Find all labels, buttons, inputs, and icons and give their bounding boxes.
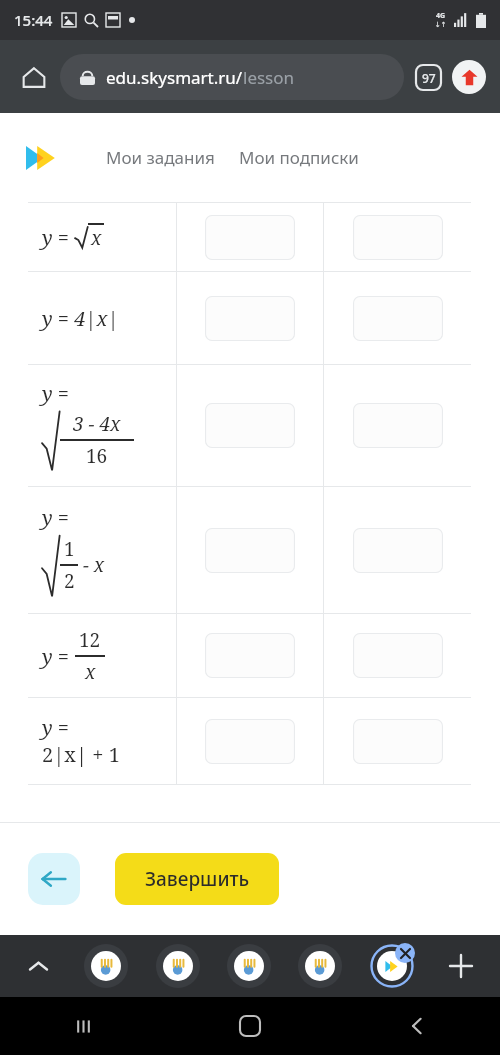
button[interactable]: Мои подписки xyxy=(239,146,359,169)
button[interactable] xyxy=(205,633,295,678)
staticText: 16 xyxy=(86,443,108,469)
button[interactable] xyxy=(353,403,443,448)
button[interactable]: Tab xyxy=(227,944,271,988)
staticText: Завершить xyxy=(145,866,250,892)
staticText: y = xyxy=(42,380,69,407)
button[interactable] xyxy=(20,136,64,180)
button[interactable] xyxy=(205,296,295,341)
button[interactable]: Home xyxy=(166,997,333,1055)
staticText: Мои задания xyxy=(106,146,215,169)
staticText: y = xyxy=(42,504,69,531)
staticText: 2 xyxy=(64,568,75,594)
button[interactable]: Back xyxy=(333,997,500,1055)
staticText: y = xyxy=(42,643,75,670)
button[interactable] xyxy=(353,528,443,573)
button[interactable]: Мои задания xyxy=(106,146,215,169)
button[interactable]: Expand xyxy=(20,948,56,984)
staticText: edu.skysmart.ru/ xyxy=(106,66,243,89)
button[interactable]: Back xyxy=(28,853,80,905)
button[interactable]: Update xyxy=(452,60,486,94)
button[interactable]: edu.skysmart.ru/ xyxy=(60,54,404,100)
button[interactable] xyxy=(353,719,443,764)
button[interactable] xyxy=(353,215,443,260)
staticText: − x xyxy=(78,552,105,578)
staticText: x xyxy=(85,659,96,685)
staticText: 97 xyxy=(422,70,436,86)
button[interactable] xyxy=(205,215,295,260)
button[interactable]: Tab xyxy=(156,944,200,988)
button[interactable] xyxy=(353,296,443,341)
staticText: 15:44 xyxy=(14,10,53,30)
button[interactable]: Close tab xyxy=(395,943,415,963)
button[interactable] xyxy=(353,633,443,678)
button[interactable]: Tab xyxy=(84,944,128,988)
staticText: 2|x| + 1 xyxy=(42,741,120,768)
staticText: lesson xyxy=(243,66,295,89)
staticText: y = xyxy=(42,714,69,741)
button[interactable] xyxy=(205,719,295,764)
staticText: ↓↑ xyxy=(435,21,447,29)
staticText: 4G xyxy=(436,11,446,21)
staticText: y = xyxy=(42,224,75,251)
staticText: 12 xyxy=(79,627,101,653)
button[interactable]: Tabs xyxy=(408,57,448,97)
staticText: 3 − 4x xyxy=(73,411,121,437)
button[interactable] xyxy=(205,528,295,573)
staticText: 1 xyxy=(64,536,75,562)
button[interactable]: Home xyxy=(14,57,54,97)
staticText: y = 4|x| xyxy=(42,305,119,332)
button[interactable] xyxy=(205,403,295,448)
button[interactable]: Завершить xyxy=(115,853,279,905)
button[interactable]: Tab xyxy=(298,944,342,988)
button[interactable]: Recents xyxy=(0,997,166,1055)
staticText: Мои подписки xyxy=(239,146,359,169)
button[interactable]: New tab xyxy=(442,947,480,985)
staticText: x xyxy=(91,225,102,251)
button[interactable]: Current tab xyxy=(377,951,407,981)
